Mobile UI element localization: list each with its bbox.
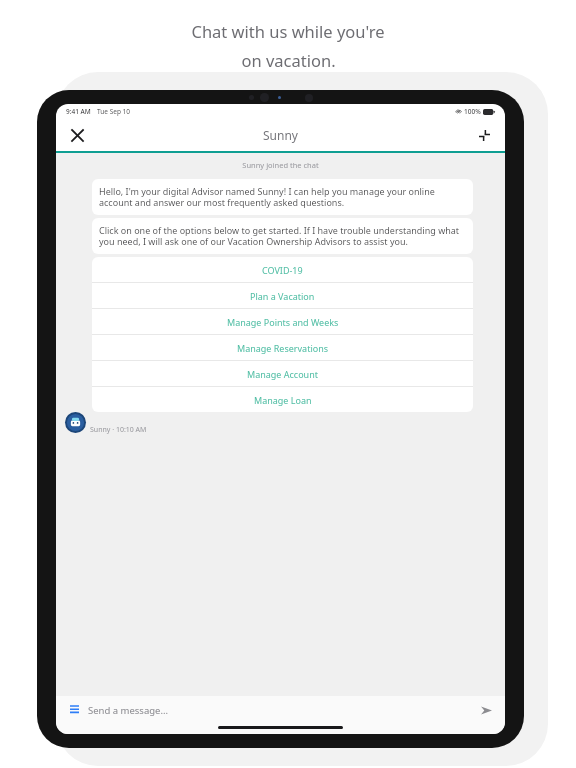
button[interactable]: Manage Points and Weeks — [92, 309, 473, 334]
staticText: Plan a Vacation — [250, 290, 315, 302]
button[interactable]: Menu — [65, 701, 83, 719]
staticText: 9:41 AM — [66, 107, 91, 116]
staticText: Sunny · 10:10 AM — [90, 425, 147, 435]
button[interactable]: Manage Reservations — [92, 335, 473, 360]
staticText: Sunny joined the chat — [56, 160, 505, 170]
button[interactable]: COVID-19 — [92, 257, 473, 282]
staticText: Chat with us while you're — [191, 20, 385, 42]
staticText: on vacation. — [241, 49, 336, 71]
staticText: 100% — [464, 107, 481, 116]
button[interactable]: Manage Account — [92, 361, 473, 386]
staticText: Sunny — [263, 127, 298, 143]
staticText: COVID-19 — [262, 264, 303, 276]
staticText: Manage Loan — [254, 394, 312, 406]
staticText: Tue Sep 10 — [97, 107, 131, 116]
button[interactable]: Plan a Vacation — [92, 283, 473, 308]
button[interactable]: Minimize window — [471, 122, 497, 148]
button[interactable]: Close chat — [64, 122, 90, 148]
button[interactable]: Send — [477, 701, 495, 719]
staticText: Manage Points and Weeks — [227, 316, 339, 328]
button[interactable]: Manage Loan — [92, 387, 473, 412]
staticText: Manage Account — [247, 368, 318, 380]
staticText: Send a message... — [88, 704, 169, 717]
staticText: Click on one of the options below to get… — [99, 224, 466, 248]
staticText: Manage Reservations — [237, 342, 329, 354]
staticText: Hello, I'm your digital Advisor named Su… — [99, 185, 466, 209]
